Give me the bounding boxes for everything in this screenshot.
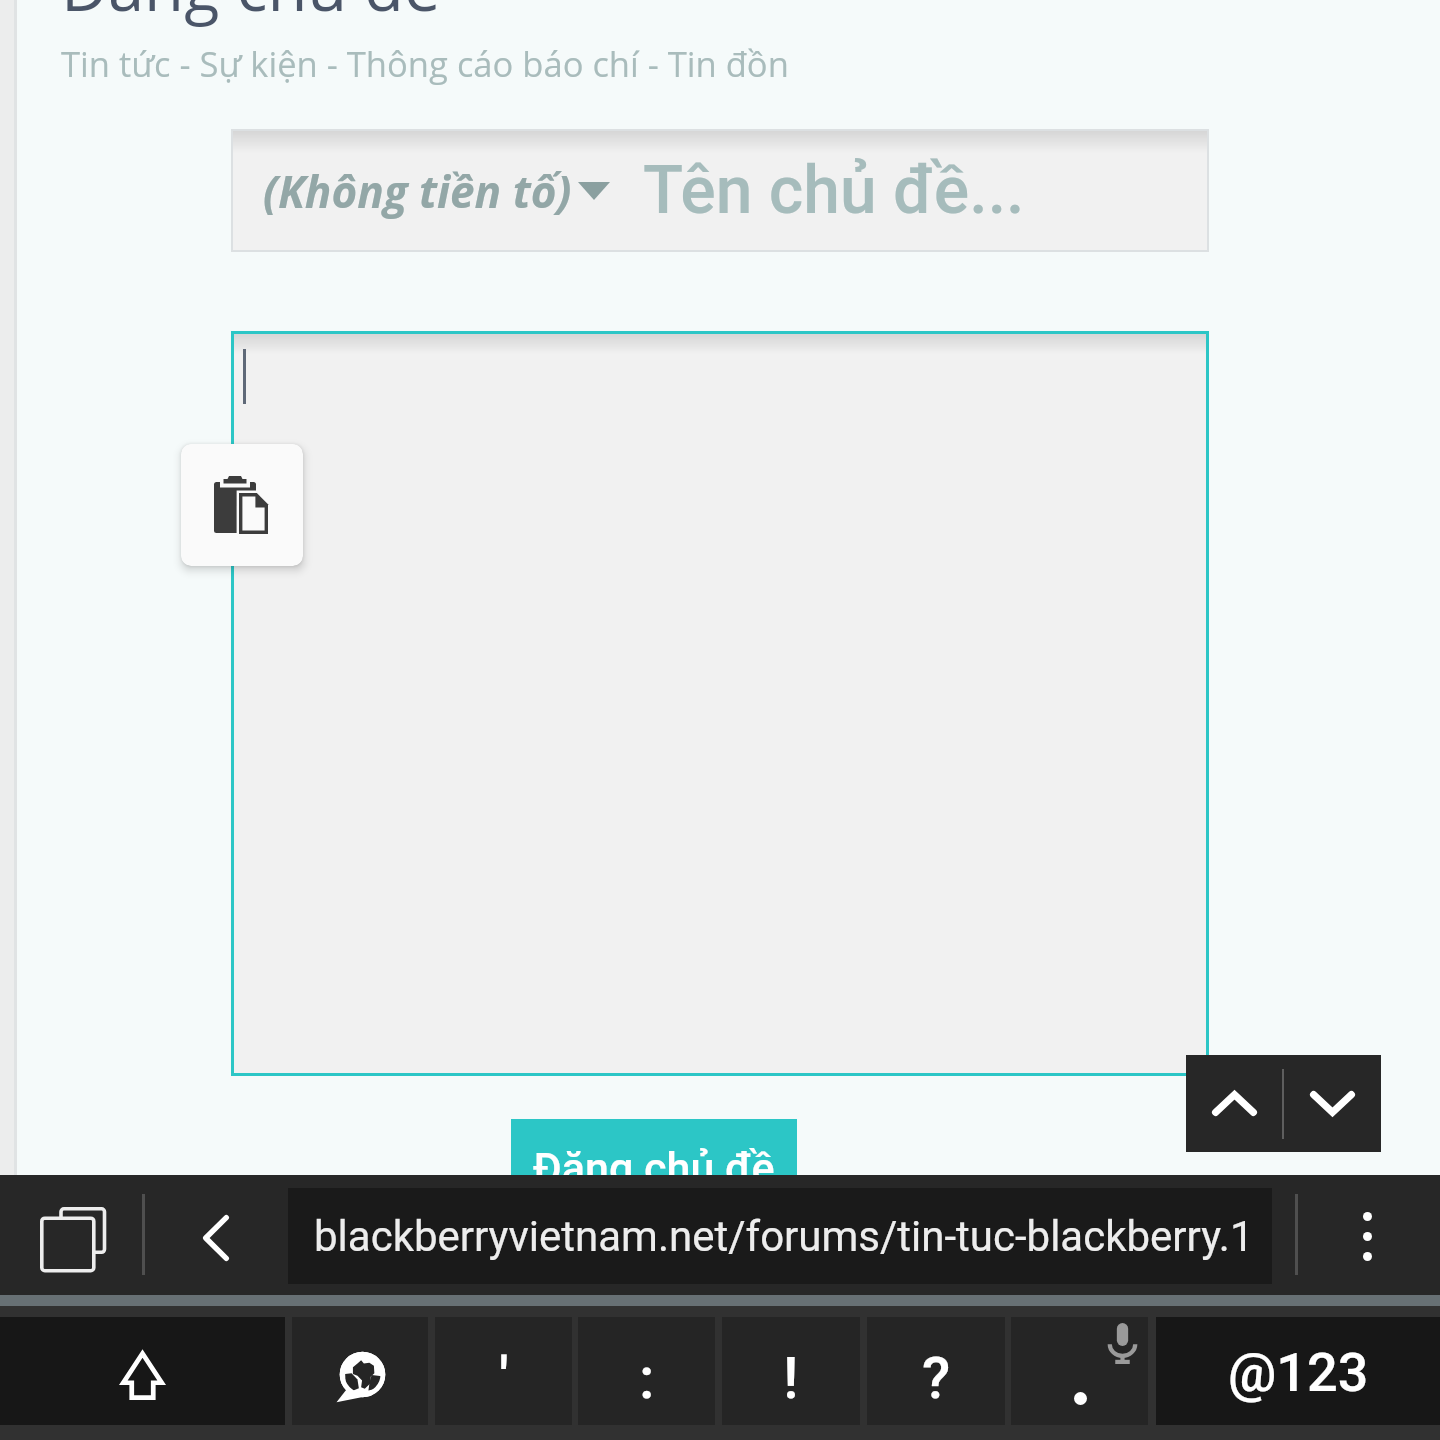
staticText: ' [499, 1344, 509, 1412]
staticText: : [639, 1344, 655, 1412]
button[interactable]: Emoji keyboard [292, 1317, 428, 1425]
staticText: Đăng chủ đề [61, 0, 441, 31]
button[interactable]: blackberryvietnam.net/forums/tin-tuc-bla… [288, 1188, 1272, 1284]
button[interactable]: : [578, 1317, 715, 1425]
staticText: Tên chủ đề... [643, 152, 1025, 229]
button[interactable]: @123 [1156, 1317, 1440, 1425]
button[interactable]: Scroll down [1284, 1055, 1381, 1152]
button[interactable]: Paste [181, 444, 303, 566]
button[interactable]: (Không tiền tố) [233, 131, 1207, 250]
staticText: Đăng chủ đề [533, 1143, 775, 1193]
staticText: Tin tức - Sự kiện - Thông cáo báo chí - … [61, 40, 789, 87]
button[interactable] [234, 334, 1206, 1073]
button[interactable]: ? [867, 1317, 1005, 1425]
staticText: (Không tiền tố) [263, 161, 572, 221]
button[interactable] [1011, 1317, 1148, 1425]
button[interactable]: Tabs [8, 1175, 136, 1295]
staticText: ! [783, 1344, 799, 1412]
staticText: @123 [1228, 1341, 1369, 1404]
button[interactable]: More options [1312, 1175, 1422, 1295]
button[interactable]: ' [435, 1317, 572, 1425]
button[interactable]: ! [722, 1317, 860, 1425]
staticText: blackberryvietnam.net/forums/tin-tuc-bla… [314, 1212, 1254, 1261]
staticText: ? [922, 1344, 951, 1412]
button[interactable]: Scroll up [1186, 1055, 1282, 1152]
button[interactable]: Đăng chủ đề [511, 1119, 797, 1229]
button[interactable]: Back [155, 1175, 277, 1295]
button[interactable]: Shift [0, 1317, 285, 1425]
